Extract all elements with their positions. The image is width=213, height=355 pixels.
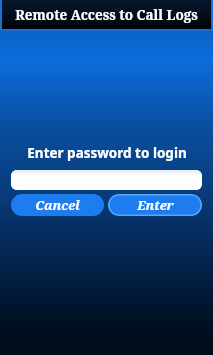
staticText: Enter (137, 196, 174, 214)
button[interactable]: Cancel (11, 194, 104, 216)
staticText: Cancel (35, 196, 80, 214)
button[interactable]: Enter (108, 194, 202, 216)
button[interactable] (11, 170, 202, 190)
staticText: Remote Access to Call Logs (15, 6, 198, 24)
staticText: Enter password to login (27, 144, 187, 162)
